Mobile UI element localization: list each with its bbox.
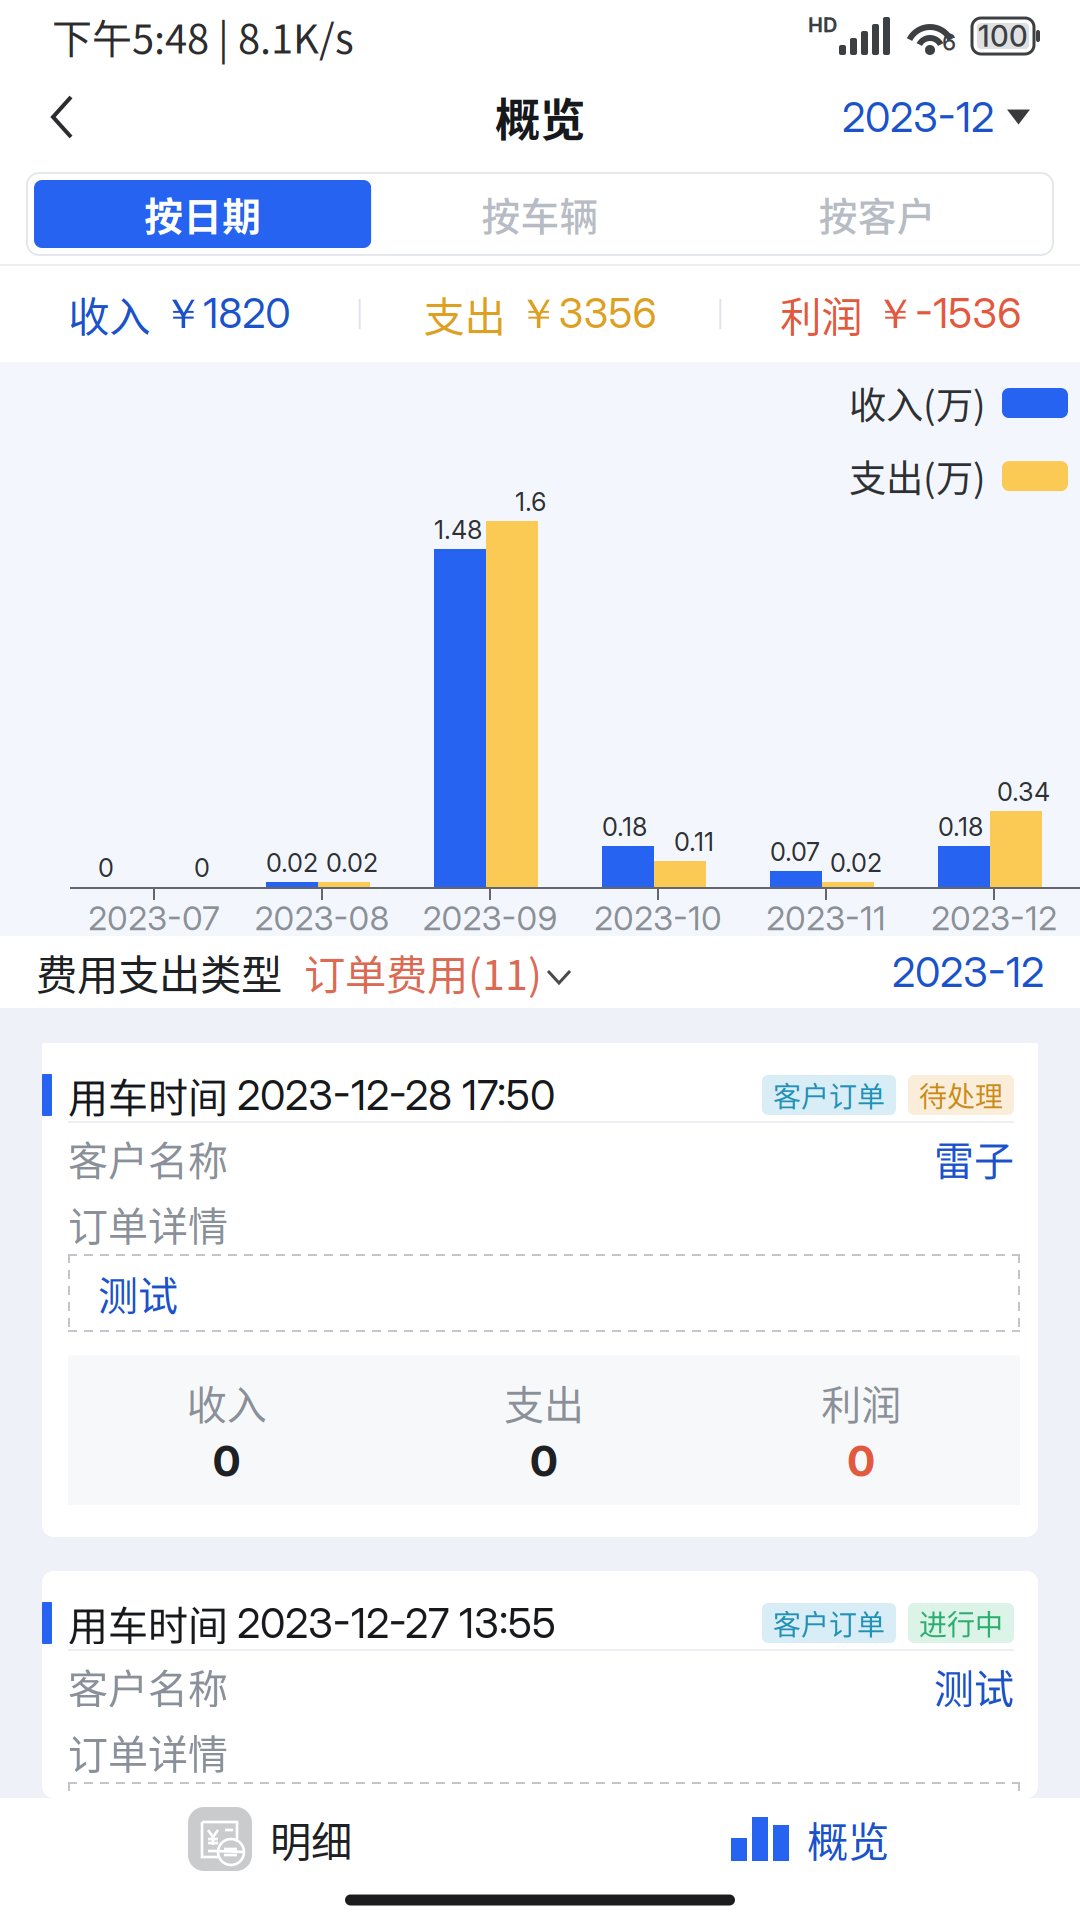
staticText: 0.07 — [770, 836, 820, 867]
staticText: 订单详情 — [68, 1722, 228, 1780]
staticText: 下午5:48 | 8.1K/s — [52, 7, 354, 65]
staticText: 利润 — [821, 1373, 901, 1431]
staticText: 收入 — [68, 284, 150, 344]
staticText: 用车时间 — [68, 1594, 237, 1652]
staticText: 0.02 — [830, 847, 882, 878]
staticText: 6 — [942, 29, 956, 56]
button[interactable]: 概览 — [540, 1798, 1080, 1880]
staticText: 0.18 — [938, 811, 983, 842]
staticText: 支出 — [423, 284, 505, 344]
button[interactable]: 按客户 — [709, 180, 1046, 248]
staticText: 客户名称 — [68, 1129, 228, 1187]
staticText: 按车辆 — [481, 186, 598, 242]
staticText: 订单费用(11) — [304, 942, 542, 1002]
staticText: HD — [808, 13, 837, 37]
staticText: 0.02 — [266, 847, 318, 878]
staticText: 费用支出类型 — [36, 942, 282, 1002]
staticText: 2023-07 — [88, 898, 220, 938]
staticText: 按客户 — [819, 186, 936, 242]
staticText: 2023-12 — [842, 92, 994, 142]
staticText: 0 — [529, 1435, 558, 1487]
staticText: 订单详情 — [68, 1194, 228, 1252]
staticText: ￥3356 — [517, 288, 656, 340]
staticText: 100 — [978, 18, 1028, 54]
staticText: ￥1820 — [162, 288, 290, 340]
staticText: 明细 — [270, 1809, 352, 1869]
staticText: ￥-1536 — [874, 288, 1021, 340]
staticText: 2023-12-28 17:50 — [237, 1070, 555, 1120]
staticText: 2023-10 — [594, 898, 722, 938]
staticText: 0.34 — [997, 776, 1050, 807]
button[interactable]: 订单费用(11) — [282, 942, 572, 1002]
staticText: 0 — [194, 852, 210, 883]
button[interactable]: 按日期 — [34, 180, 371, 248]
staticText: 0.18 — [602, 811, 647, 842]
staticText: 2023-12 — [892, 947, 1044, 997]
staticText: 支出(万) — [849, 449, 986, 503]
staticText: 利润 — [780, 284, 862, 344]
staticText: 2023-12 — [931, 898, 1057, 938]
staticText: 收入 — [187, 1373, 267, 1431]
staticText: 2023-12-27 13:55 — [237, 1598, 556, 1648]
staticText: 按日期 — [144, 186, 261, 242]
button[interactable]: 2023-12 — [892, 947, 1044, 997]
staticText: 客户名称 — [68, 1657, 228, 1715]
staticText: 客户订单 — [773, 1603, 885, 1643]
staticText: 0 — [847, 1435, 876, 1487]
staticText: 用车时间 — [68, 1066, 237, 1124]
staticText: 0.11 — [674, 826, 714, 857]
staticText: 0 — [98, 852, 114, 883]
staticText: 待处理 — [919, 1075, 1003, 1115]
staticText: 概览 — [807, 1809, 889, 1869]
staticText: 2023-08 — [254, 898, 389, 938]
staticText: 0 — [212, 1435, 241, 1487]
staticText: 1.48 — [434, 514, 482, 545]
staticText: 收入(万) — [849, 376, 986, 430]
button[interactable]: 明细 — [0, 1798, 540, 1880]
staticText: 2023-09 — [422, 898, 557, 938]
staticText: 测试 — [934, 1657, 1014, 1715]
staticText: 测试 — [98, 1264, 178, 1322]
staticText: 雷子 — [934, 1129, 1014, 1187]
staticText: 0.02 — [326, 847, 378, 878]
staticText: 进行中 — [919, 1603, 1003, 1643]
button[interactable]: 2023-12 — [842, 72, 1054, 162]
button[interactable]: 按车辆 — [371, 180, 709, 248]
button[interactable]: Back — [22, 72, 102, 162]
staticText: 1.6 — [515, 486, 546, 517]
staticText: 客户订单 — [773, 1075, 885, 1115]
staticText: 2023-11 — [766, 898, 886, 938]
staticText: 概览 — [495, 84, 585, 150]
staticText: 支出 — [504, 1373, 584, 1431]
